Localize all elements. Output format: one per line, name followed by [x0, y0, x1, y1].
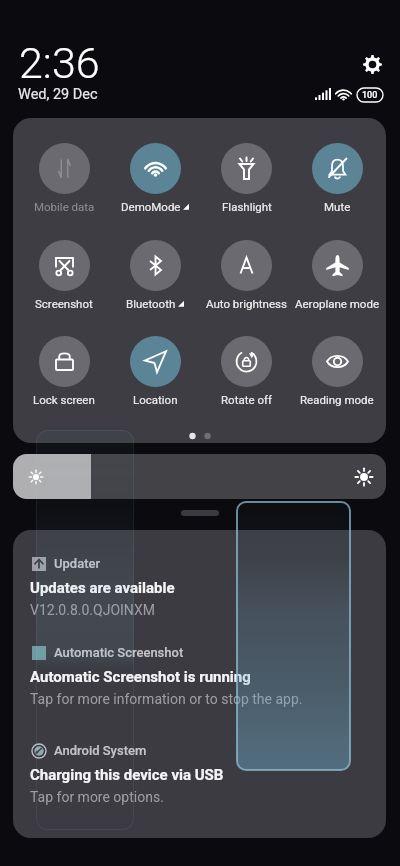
button[interactable]: Flashlight	[198, 143, 294, 229]
staticText: V12.0.8.0.QJOINXM	[30, 602, 155, 618]
button[interactable]: Mute	[289, 143, 385, 229]
button[interactable]: Screenshot	[16, 240, 112, 326]
staticText: Android System	[54, 743, 147, 758]
staticText: Updater	[54, 556, 101, 571]
button[interactable]: DemoMode	[107, 143, 203, 229]
staticText: 2:36	[19, 38, 100, 88]
button[interactable]: Aeroplane mode	[289, 240, 385, 326]
staticText: Mute	[324, 200, 351, 213]
staticText: Tap for more information or to stop the …	[30, 691, 303, 707]
button[interactable]: Location	[107, 336, 203, 422]
staticText: Aeroplane mode	[295, 297, 379, 310]
staticText: Charging this device via USB	[30, 766, 224, 784]
button[interactable]: Android System	[13, 744, 386, 824]
button[interactable]: Settings	[358, 50, 387, 79]
staticText: DemoMode	[121, 200, 181, 213]
button[interactable]: Auto brightness	[198, 240, 294, 326]
button[interactable]: Mobile data	[16, 143, 112, 229]
button[interactable]: Automatic Screenshot	[13, 646, 386, 726]
staticText: Tap for more options.	[30, 789, 164, 805]
staticText: Updates are available	[30, 579, 175, 597]
staticText: 100	[362, 90, 378, 101]
staticText: Mobile data	[34, 200, 95, 213]
staticText: Wed, 29 Dec	[18, 86, 98, 103]
button[interactable]: Reading mode	[289, 336, 385, 422]
button[interactable]: Updater	[13, 557, 386, 637]
staticText: Rotate off	[221, 393, 272, 406]
staticText: Location	[133, 393, 178, 406]
staticText: Automatic Screenshot	[54, 645, 184, 660]
button[interactable]: Lock screen	[16, 336, 112, 422]
staticText: Automatic Screenshot is running	[30, 668, 251, 686]
button[interactable]: Rotate off	[198, 336, 294, 422]
button[interactable]: Brightness	[13, 454, 386, 499]
staticText: Reading mode	[300, 393, 374, 406]
staticText: Bluetooth	[126, 297, 176, 310]
staticText: Auto brightness	[206, 297, 287, 310]
staticText: Screenshot	[35, 297, 93, 310]
staticText: Lock screen	[33, 393, 95, 406]
button[interactable]: Bluetooth	[107, 240, 203, 326]
staticText: Flashlight	[222, 200, 272, 213]
